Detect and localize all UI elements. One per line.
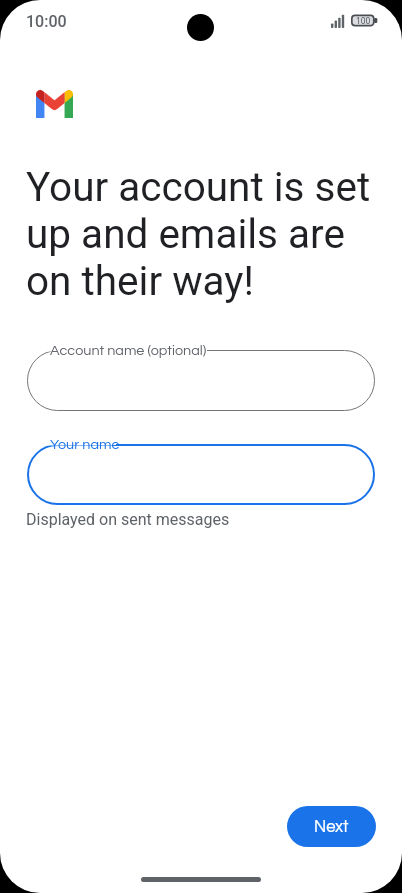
staticText: Displayed on sent messages (26, 510, 230, 529)
staticText: Your name (50, 437, 120, 452)
staticText: 100 (356, 16, 371, 26)
staticText: Next (314, 818, 349, 835)
staticText: Your account is set up and emails are on… (26, 164, 382, 305)
button[interactable]: Your name (27, 444, 375, 505)
staticText: Account name (optional) (50, 343, 207, 358)
button[interactable]: Next (287, 806, 376, 847)
staticText: 10:00 (26, 12, 67, 31)
button[interactable]: Account name (optional) (27, 350, 375, 411)
